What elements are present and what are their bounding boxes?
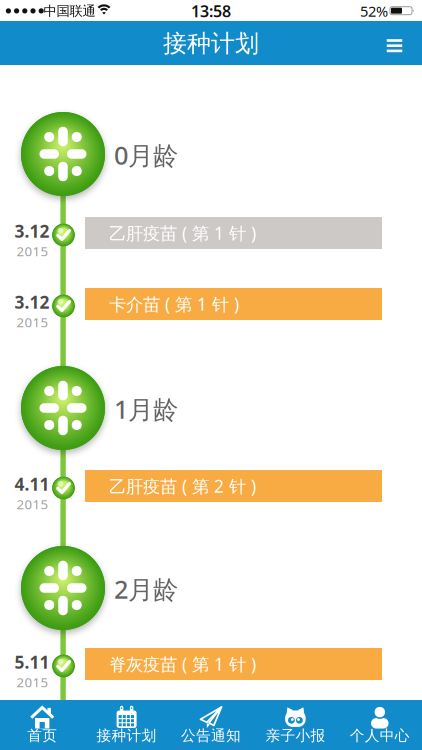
staticText: 个人中心 (350, 727, 410, 745)
staticText: 4.11 (14, 472, 49, 495)
staticText: 脊灰疫苗 ( 第 1 针 ) (109, 652, 256, 675)
staticText: 乙肝疫苗 ( 第 2 针 ) (109, 474, 256, 497)
button[interactable]: 首页 (0, 700, 84, 750)
staticText: 乙肝疫苗 ( 第 1 针 ) (109, 221, 256, 244)
staticText: 2015 (16, 242, 48, 260)
staticText: 首页 (27, 727, 57, 745)
staticText: 2015 (16, 313, 48, 331)
button[interactable]: 乙肝疫苗 ( 第 2 针 ) (85, 470, 382, 502)
button[interactable]: 菜单 (379, 31, 410, 60)
staticText: 3.12 (14, 219, 49, 242)
staticText: 中国联通 (43, 3, 95, 19)
button[interactable]: 公告通知 (169, 700, 253, 750)
staticText: 3.12 (14, 290, 49, 313)
staticText: 接种计划 (163, 29, 259, 58)
staticText: 接种计划 (97, 727, 157, 745)
button[interactable]: 卡介苗 ( 第 1 针 ) (85, 288, 382, 320)
button[interactable]: 亲子小报 (253, 700, 338, 750)
button[interactable]: 接种计划 (84, 700, 169, 750)
button[interactable]: 个人中心 (338, 700, 422, 750)
staticText: 2015 (16, 495, 48, 513)
staticText: 公告通知 (181, 727, 241, 745)
staticText: 2月龄 (114, 572, 178, 606)
staticText: 5.11 (14, 650, 49, 673)
staticText: 1月龄 (114, 392, 178, 426)
staticText: 2015 (16, 673, 48, 691)
staticText: 卡介苗 ( 第 1 针 ) (109, 292, 239, 315)
button[interactable]: 脊灰疫苗 ( 第 1 针 ) (85, 648, 382, 680)
staticText: 亲子小报 (265, 727, 325, 745)
button[interactable]: 乙肝疫苗 ( 第 1 针 ) (85, 217, 382, 249)
staticText: 13:58 (191, 0, 231, 22)
staticText: 52% (360, 1, 388, 21)
staticText: 0月龄 (114, 138, 178, 172)
